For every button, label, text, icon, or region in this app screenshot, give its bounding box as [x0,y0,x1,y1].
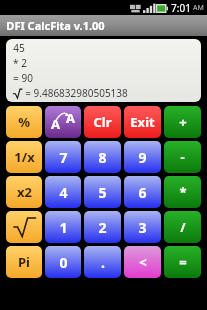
staticText: A [66,109,75,127]
staticText: % [18,113,30,131]
button[interactable]: + [164,106,201,138]
staticText: 5 [98,183,107,202]
button[interactable]: Clr [84,106,121,138]
staticText: + [179,113,187,131]
staticText: Exit [130,113,155,131]
button[interactable]: 7 [45,141,81,173]
button[interactable]: 3 [124,211,161,243]
staticText: x2 [17,183,32,201]
staticText: A [51,115,60,133]
staticText: = 9.486832980505138 [25,86,128,100]
button[interactable]: - [164,141,201,173]
staticText: . [101,253,105,272]
button[interactable]: 8 [84,141,121,173]
staticText: * [179,183,187,201]
staticText: Pi [18,253,30,271]
button[interactable]: = [164,246,201,278]
button[interactable]: 9 [124,141,161,173]
button[interactable]: 45 [6,39,201,102]
staticText: 2 [98,218,107,237]
staticText: 7:01 [171,1,191,15]
button[interactable]: 6 [124,176,161,208]
staticText: 7 [59,148,68,167]
staticText: 1 [59,218,68,237]
button[interactable]: < [124,246,161,278]
staticText: AM [193,3,204,13]
staticText: DFI CalcFita v.1.00 [6,18,105,33]
staticText: 8 [98,148,107,167]
button[interactable]: 5 [84,176,121,208]
button[interactable]: / [164,211,201,243]
staticText: 6 [138,183,147,202]
staticText: Clr [93,113,112,131]
button[interactable]: * [164,176,201,208]
staticText: * 2 [13,56,27,70]
staticText: 4 [59,183,68,202]
button[interactable]: 1 [45,211,81,243]
staticText: < [139,253,147,271]
button[interactable]: x2 [6,176,42,208]
button[interactable]: 1/x [6,141,42,173]
button[interactable]: Exit [124,106,161,138]
staticText: 45 [13,41,25,55]
button[interactable]: 4 [45,176,81,208]
staticText: 0 [59,253,68,272]
button[interactable]: . [84,246,121,278]
staticText: / [180,218,186,236]
button[interactable]: 2 [84,211,121,243]
button[interactable]: % [6,106,42,138]
staticText: - [180,148,185,166]
staticText: = 90 [13,71,33,85]
staticText: = [179,253,187,271]
staticText: 9 [138,148,147,167]
staticText: 1/x [14,148,35,166]
button[interactable]: power [45,106,81,138]
button[interactable]: 0 [45,246,81,278]
staticText: 3 [138,218,147,237]
button[interactable]: Pi [6,246,42,278]
button[interactable]: sqrt [6,211,42,243]
